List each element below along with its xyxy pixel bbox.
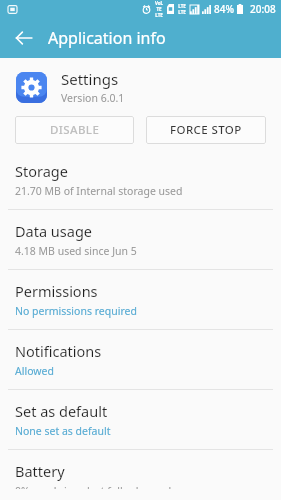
button[interactable]: Permissions <box>0 270 281 329</box>
staticText: 84% <box>214 2 234 16</box>
staticText: Set as default <box>15 401 108 421</box>
button[interactable]: DISABLE <box>15 116 134 144</box>
staticText: Version 6.0.1 <box>61 91 125 105</box>
staticText: Battery <box>15 461 65 481</box>
button[interactable]: Settings <box>0 58 281 116</box>
staticText: VoLTE <box>154 0 164 12</box>
staticText: None set as default <box>15 424 111 438</box>
staticText: Permissions <box>15 281 98 301</box>
staticText: LTE <box>178 9 186 15</box>
staticText: Storage <box>15 161 68 181</box>
button[interactable]: Set as default <box>0 390 281 449</box>
staticText: Allowed <box>15 364 54 378</box>
staticText: LTE <box>155 12 163 18</box>
staticText: 20:08 <box>250 2 276 16</box>
staticText: Data usage <box>15 221 92 241</box>
staticText: 21.70 MB of Internal storage used <box>15 184 183 198</box>
staticText: FORCE STOP <box>170 122 242 138</box>
button[interactable]: FORCE STOP <box>146 116 266 144</box>
staticText: No permissions required <box>15 304 137 318</box>
button[interactable]: Storage <box>0 150 281 209</box>
button[interactable]: Notifications <box>0 330 281 389</box>
button[interactable]: Data usage <box>0 210 281 269</box>
staticText: DISABLE <box>50 122 100 138</box>
staticText: Notifications <box>15 341 102 361</box>
button[interactable]: Back <box>8 22 40 54</box>
staticText: 4.18 MB used since Jun 5 <box>15 244 137 258</box>
staticText: 0% used since last fully charged <box>15 484 172 489</box>
staticText: Application info <box>48 27 166 49</box>
staticText: LTE <box>178 3 186 9</box>
button[interactable]: Battery <box>0 450 281 500</box>
staticText: Settings <box>61 69 119 89</box>
